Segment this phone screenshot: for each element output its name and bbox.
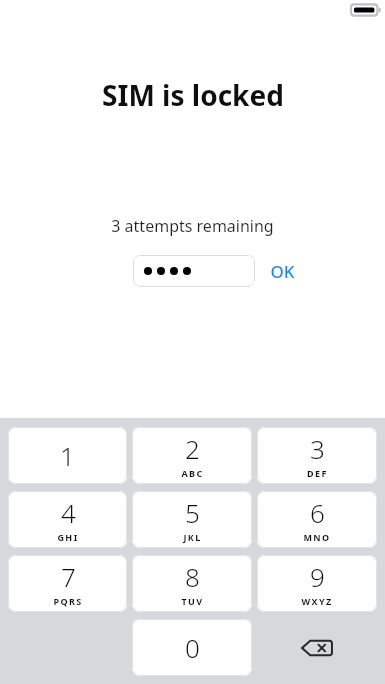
staticText: PQRS — [53, 595, 83, 607]
button[interactable]: 7 — [8, 555, 127, 612]
staticText: 3 — [310, 431, 325, 466]
button[interactable]: OK — [264, 256, 301, 287]
staticText: ABC — [181, 467, 204, 479]
button[interactable]: PIN entry — [133, 255, 255, 287]
staticText: WXYZ — [301, 595, 333, 607]
button[interactable]: 9 — [257, 555, 377, 612]
button[interactable]: 1 — [8, 427, 127, 484]
staticText: 9 — [310, 559, 325, 594]
other: Battery full — [351, 3, 381, 17]
button[interactable]: 3 — [257, 427, 377, 484]
staticText: 6 — [310, 495, 325, 530]
staticText: TUV — [181, 595, 204, 607]
button[interactable]: 0 — [132, 619, 252, 676]
staticText: GHI — [57, 531, 79, 543]
staticText: 4 — [61, 495, 76, 530]
staticText: 1 — [60, 438, 75, 473]
staticText: 8 — [185, 559, 200, 594]
button[interactable]: 8 — [132, 555, 252, 612]
staticText: 5 — [185, 495, 200, 530]
staticText: JKL — [183, 531, 202, 543]
staticText: MNO — [303, 531, 331, 543]
staticText: DEF — [307, 467, 328, 479]
staticText: 2 — [185, 431, 200, 466]
staticText: 3 attempts remaining — [111, 215, 274, 237]
staticText: 0 — [185, 630, 200, 665]
staticText: SIM is locked — [102, 76, 284, 114]
button[interactable]: 5 — [132, 491, 252, 548]
button[interactable]: 2 — [132, 427, 252, 484]
button[interactable]: 4 — [8, 491, 127, 548]
button[interactable]: Backspace — [257, 619, 377, 676]
staticText: 7 — [61, 559, 76, 594]
staticText: OK — [270, 260, 295, 283]
button[interactable]: 6 — [257, 491, 377, 548]
